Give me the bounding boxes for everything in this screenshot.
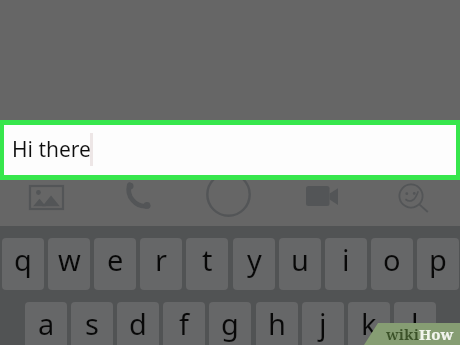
button[interactable]: t bbox=[186, 238, 228, 290]
button[interactable]: l bbox=[394, 302, 436, 345]
button[interactable]: Video call bbox=[276, 172, 368, 222]
button[interactable]: Record bbox=[184, 172, 276, 222]
staticText: How bbox=[419, 324, 454, 344]
button[interactable]: w bbox=[48, 238, 90, 290]
staticText: s bbox=[85, 304, 99, 343]
staticText: g bbox=[221, 304, 239, 343]
button[interactable]: i bbox=[325, 238, 367, 290]
staticText: a bbox=[38, 304, 55, 343]
button[interactable]: u bbox=[279, 238, 321, 290]
button[interactable]: p bbox=[417, 238, 459, 290]
staticText: q bbox=[14, 240, 32, 279]
button[interactable]: j bbox=[302, 302, 344, 345]
staticText: r bbox=[155, 240, 167, 279]
staticText: p bbox=[429, 240, 447, 279]
button[interactable]: a bbox=[25, 302, 67, 345]
button[interactable]: Call bbox=[92, 172, 184, 222]
button[interactable]: k bbox=[348, 302, 390, 345]
staticText: y bbox=[247, 240, 262, 279]
button[interactable]: f bbox=[163, 302, 205, 345]
button[interactable]: o bbox=[371, 238, 413, 290]
staticText: o bbox=[383, 240, 401, 279]
button[interactable]: q bbox=[2, 238, 44, 290]
staticText: l bbox=[411, 304, 419, 343]
button[interactable]: r bbox=[140, 238, 182, 290]
staticText: i bbox=[342, 240, 350, 279]
staticText: j bbox=[319, 304, 327, 343]
button[interactable]: d bbox=[117, 302, 159, 345]
staticText: wiki bbox=[386, 324, 419, 344]
button[interactable]: e bbox=[94, 238, 136, 290]
button[interactable]: h bbox=[256, 302, 298, 345]
staticText: Hi there bbox=[12, 135, 91, 164]
staticText: w bbox=[58, 240, 81, 279]
staticText: u bbox=[291, 240, 309, 279]
staticText: h bbox=[268, 304, 286, 343]
button[interactable]: Stickers bbox=[368, 172, 460, 222]
staticText: d bbox=[129, 304, 147, 343]
staticText: e bbox=[107, 240, 124, 279]
button[interactable]: y bbox=[233, 238, 275, 290]
button[interactable]: Hi there bbox=[4, 125, 456, 175]
button[interactable]: s bbox=[71, 302, 113, 345]
button[interactable]: g bbox=[209, 302, 251, 345]
staticText: t bbox=[202, 240, 213, 279]
staticText: k bbox=[361, 304, 377, 343]
staticText: f bbox=[179, 304, 189, 343]
button[interactable]: Gallery bbox=[0, 172, 92, 222]
